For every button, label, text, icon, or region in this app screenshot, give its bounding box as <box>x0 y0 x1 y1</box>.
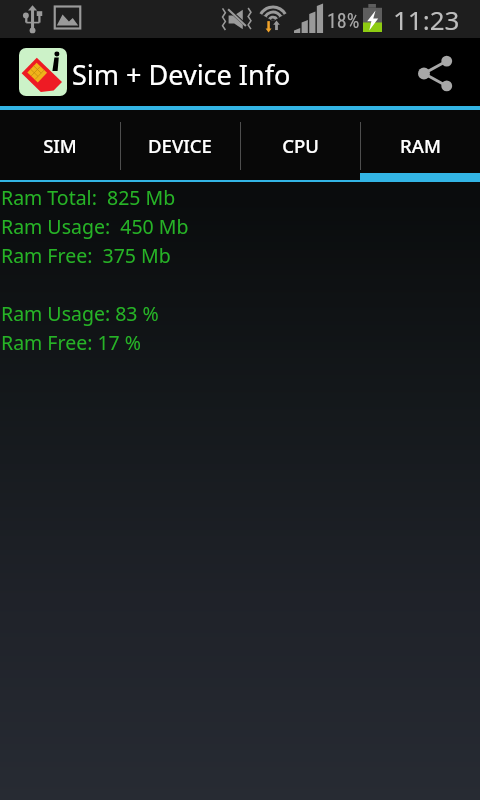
button[interactable]: Share <box>406 43 464 101</box>
staticText: SIM <box>43 133 77 158</box>
button[interactable]: CPU <box>240 110 360 182</box>
button[interactable]: DEVICE <box>120 110 240 182</box>
staticText: 11:23 <box>393 2 460 37</box>
staticText: CPU <box>282 133 319 158</box>
staticText: DEVICE <box>148 133 212 158</box>
staticText: 18% <box>327 9 360 32</box>
staticText: RAM <box>400 133 441 158</box>
staticText: Ram Total: 825 Mb Ram Usage: 450 Mb Ram … <box>1 184 189 355</box>
button[interactable]: RAM <box>360 110 480 182</box>
button[interactable]: SIM <box>0 110 120 182</box>
staticText: Sim + Device Info <box>72 56 291 93</box>
